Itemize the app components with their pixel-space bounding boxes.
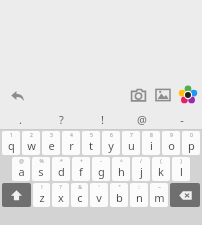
button[interactable]: 1 <box>2 131 20 155</box>
button[interactable]: 8 <box>142 131 160 155</box>
staticText: 8 <box>150 132 153 139</box>
button[interactable]: + <box>72 157 90 181</box>
staticText: + <box>80 158 83 165</box>
button[interactable]: Stickers <box>177 84 199 106</box>
button[interactable]: 4 <box>62 131 80 155</box>
button[interactable]: ^ <box>112 157 130 181</box>
button[interactable]: Undo <box>6 84 28 106</box>
staticText: h <box>118 164 125 179</box>
staticText: ^ <box>120 158 123 165</box>
staticText: k <box>158 164 164 179</box>
button[interactable]: % <box>32 157 50 181</box>
staticText: : <box>138 184 140 191</box>
staticText: 3 <box>50 132 53 139</box>
staticText: c <box>77 190 83 205</box>
staticText: & <box>78 184 82 191</box>
staticText: ! <box>101 112 104 127</box>
staticText: l <box>180 164 183 179</box>
staticText: ' <box>98 184 100 191</box>
staticText: 6 <box>110 132 113 139</box>
button[interactable]: & <box>71 183 88 207</box>
button[interactable]: Shift <box>2 183 31 207</box>
staticText: 2 <box>30 132 33 139</box>
button[interactable]: 6 <box>102 131 120 155</box>
button[interactable]: . <box>0 109 41 130</box>
button[interactable]: ' <box>90 183 108 207</box>
staticText: o <box>168 138 175 153</box>
staticText: m <box>154 190 165 205</box>
button[interactable]: * <box>52 157 70 181</box>
staticText: @ <box>19 158 24 165</box>
staticText: g <box>98 164 105 179</box>
staticText: * <box>60 158 63 165</box>
staticText: 5 <box>90 132 93 139</box>
staticText: j <box>140 164 143 179</box>
button[interactable]: @ <box>122 109 162 130</box>
button[interactable]: ! <box>82 109 122 130</box>
staticText: p <box>188 138 195 153</box>
staticText: x <box>58 190 64 205</box>
button[interactable]: Gallery <box>152 84 174 106</box>
staticText: y <box>108 138 114 153</box>
button[interactable]: ? <box>41 109 82 130</box>
staticText: 9 <box>170 132 173 139</box>
staticText: n <box>136 190 143 205</box>
button[interactable]: @ <box>12 157 30 181</box>
staticText: z <box>39 190 45 205</box>
button[interactable]: 7 <box>122 131 140 155</box>
staticText: ~ <box>158 184 161 191</box>
button[interactable]: ~ <box>150 183 168 207</box>
button[interactable]: ! <box>33 183 50 207</box>
staticText: ! <box>41 184 43 191</box>
staticText: / <box>140 158 142 165</box>
staticText: r <box>69 138 74 153</box>
staticText: 7 <box>130 132 133 139</box>
button[interactable]: : <box>130 183 148 207</box>
button[interactable]: 9 <box>162 131 180 155</box>
staticText: ? <box>59 184 62 191</box>
staticText: - <box>100 158 102 165</box>
staticText: 4 <box>70 132 73 139</box>
staticText: u <box>128 138 135 153</box>
button[interactable]: 3 <box>42 131 60 155</box>
staticText: " <box>118 184 121 191</box>
staticText: . <box>19 112 22 127</box>
button[interactable]: 2 <box>22 131 40 155</box>
button[interactable]: 5 <box>82 131 100 155</box>
staticText: q <box>8 138 15 153</box>
staticText: i <box>150 138 153 153</box>
staticText: v <box>96 190 102 205</box>
staticText: % <box>39 158 44 165</box>
button[interactable]: " <box>110 183 128 207</box>
button[interactable]: ( <box>152 157 170 181</box>
staticText: 1 <box>10 132 13 139</box>
staticText: f <box>79 164 83 179</box>
staticText: e <box>48 138 55 153</box>
button[interactable]: ? <box>52 183 69 207</box>
button[interactable]: - <box>162 109 202 130</box>
staticText: b <box>116 190 123 205</box>
button[interactable]: Backspace <box>170 183 200 207</box>
staticText: @ <box>137 112 147 127</box>
button[interactable]: Camera <box>127 84 149 106</box>
staticText: 0 <box>190 132 193 139</box>
staticText: w <box>27 138 36 153</box>
button[interactable]: - <box>92 157 110 181</box>
staticText: - <box>180 112 184 127</box>
staticText: ? <box>59 112 64 127</box>
staticText: d <box>58 164 65 179</box>
staticText: ( <box>160 158 162 165</box>
staticText: ) <box>180 158 182 165</box>
staticText: a <box>18 164 25 179</box>
button[interactable]: / <box>132 157 150 181</box>
staticText: t <box>89 138 93 153</box>
button[interactable]: 0 <box>182 131 200 155</box>
staticText: s <box>38 164 44 179</box>
button[interactable]: ) <box>172 157 190 181</box>
